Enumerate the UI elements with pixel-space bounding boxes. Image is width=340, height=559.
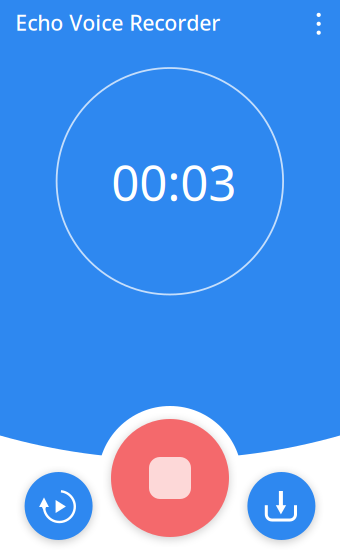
staticText: Echo Voice Recorder bbox=[15, 8, 220, 37]
button[interactable]: Stop recording bbox=[98, 406, 242, 550]
button[interactable]: Save recording bbox=[247, 472, 315, 540]
staticText: 00:03 bbox=[111, 149, 236, 214]
button[interactable]: More options bbox=[302, 2, 336, 42]
button[interactable]: Replay bbox=[25, 472, 93, 540]
